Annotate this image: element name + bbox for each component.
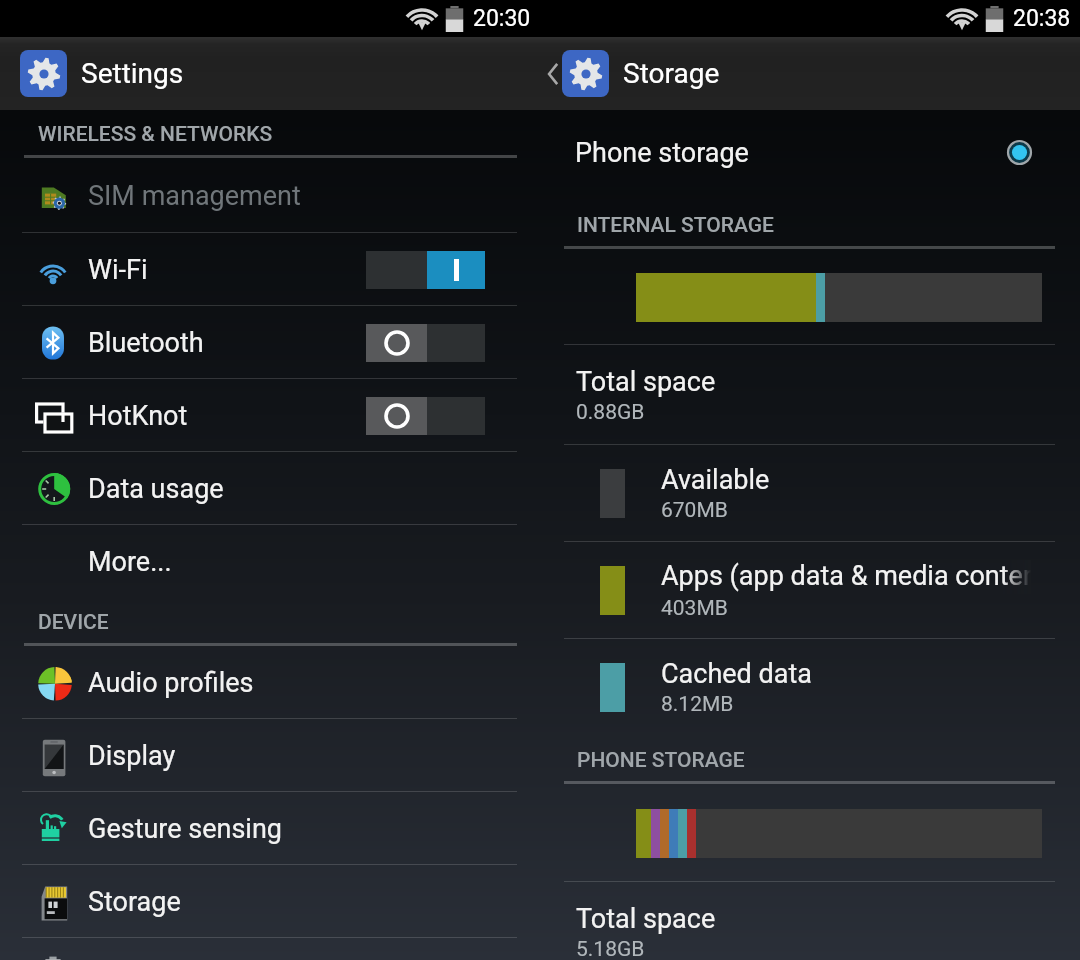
staticText: 8.12MB [661, 692, 734, 717]
button[interactable] [366, 397, 485, 435]
button[interactable]: Battery [0, 938, 540, 960]
button[interactable]: Audio profiles [0, 646, 540, 719]
staticText: HotKnot [88, 400, 188, 432]
staticText: Audio profiles [88, 667, 254, 699]
staticText: Wi-Fi [88, 254, 148, 286]
staticText: 403MB [661, 596, 728, 621]
staticText: Storage [88, 886, 181, 918]
button[interactable]: Settings [0, 37, 540, 110]
button[interactable]: Cached data [540, 639, 1080, 736]
staticText: INTERNAL STORAGE [577, 213, 774, 238]
staticText: Total space [576, 366, 946, 398]
button[interactable]: Display [0, 719, 540, 792]
staticText: Bluetooth [88, 327, 204, 359]
button[interactable]: HotKnot [0, 379, 540, 452]
staticText: Apps (app data & media content) [661, 560, 1031, 592]
staticText: 0.88GB [576, 400, 645, 425]
button[interactable]: Gesture sensing [0, 792, 540, 865]
staticText: Available [661, 464, 1031, 496]
button[interactable]: Phone storage [540, 110, 1080, 201]
button[interactable]: More... [0, 525, 540, 598]
button[interactable]: Navigate up [540, 37, 1080, 110]
button[interactable]: Bluetooth [0, 306, 540, 379]
staticText: PHONE STORAGE [577, 748, 745, 773]
staticText: Settings [81, 57, 184, 90]
button[interactable]: Total space [540, 345, 1080, 445]
button[interactable] [366, 324, 485, 362]
other: Phone storage selected [1006, 139, 1033, 166]
staticText: Data usage [88, 473, 224, 505]
staticText: 670MB [661, 498, 728, 523]
staticText: 20:38 [1013, 5, 1071, 32]
staticText: Storage [623, 57, 720, 90]
staticText: 5.18GB [576, 937, 645, 960]
staticText: Phone storage [575, 137, 749, 169]
staticText: DEVICE [38, 610, 109, 635]
staticText: More... [88, 546, 172, 578]
staticText: SIM management [88, 180, 301, 212]
staticText: Gesture sensing [88, 813, 283, 845]
staticText: Cached data [661, 658, 1031, 690]
button[interactable]: Wi-Fi [0, 233, 540, 306]
button[interactable]: Total space [540, 882, 1080, 960]
staticText: Display [88, 740, 176, 772]
button[interactable]: Apps (app data & media content) [540, 542, 1080, 639]
button[interactable]: SIM management [0, 158, 540, 233]
button[interactable]: Storage [0, 865, 540, 938]
other: Navigate up [546, 60, 560, 88]
button[interactable]: Available [540, 445, 1080, 542]
staticText: 20:30 [473, 5, 531, 32]
button[interactable]: Data usage [0, 452, 540, 525]
button[interactable] [366, 251, 485, 289]
staticText: WIRELESS & NETWORKS [38, 122, 273, 147]
staticText: Total space [576, 903, 946, 935]
